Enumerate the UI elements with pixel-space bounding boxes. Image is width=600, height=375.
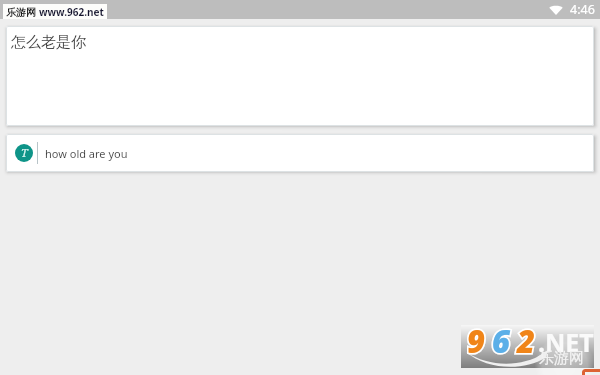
button[interactable]: 怎么老是你 (6, 26, 594, 126)
staticText: 乐游网 (539, 349, 584, 368)
staticText: 4:46 (570, 1, 595, 18)
staticText: 乐游网 (6, 6, 36, 19)
staticText: 6 (492, 320, 510, 362)
button[interactable]: Translator (6, 134, 594, 172)
staticText: www.962.net (39, 5, 104, 19)
staticText: 怎么老是你 (11, 33, 86, 52)
staticText: how old are you (45, 146, 128, 161)
staticText: 2 (517, 320, 535, 362)
staticText: 6 (492, 320, 510, 362)
other: Translator (15, 144, 33, 162)
staticText: 2 (517, 320, 535, 362)
staticText: .NET (538, 325, 594, 359)
staticText: 9 (467, 320, 485, 362)
other: Wi-Fi signal (549, 4, 563, 16)
staticText: 9 (467, 320, 485, 362)
staticText: T (21, 145, 28, 160)
